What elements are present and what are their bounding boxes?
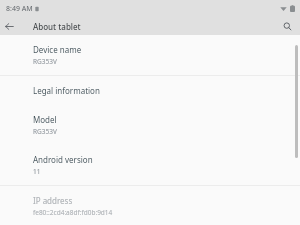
staticText: RG353V xyxy=(33,57,57,66)
staticText: About tablet xyxy=(33,21,81,32)
button[interactable]: Search xyxy=(278,17,296,35)
button[interactable]: IP address xyxy=(0,186,300,225)
button[interactable]: Device name xyxy=(0,35,300,75)
staticText: Android version xyxy=(33,154,93,165)
button[interactable]: Android version xyxy=(0,145,300,185)
staticText: Model xyxy=(33,114,57,125)
staticText: RG353V xyxy=(33,127,57,136)
staticText: IP address xyxy=(33,195,73,206)
button[interactable]: Model xyxy=(0,105,300,145)
staticText: 8:49 AM xyxy=(6,4,33,14)
button[interactable]: Legal information xyxy=(0,76,300,105)
button[interactable]: Back xyxy=(0,17,18,35)
staticText: 11 xyxy=(33,167,41,176)
staticText: fe80::2cd4:a8df:fd0b:9d14 xyxy=(33,208,113,216)
staticText: Legal information xyxy=(33,85,100,96)
staticText: Device name xyxy=(33,44,82,55)
